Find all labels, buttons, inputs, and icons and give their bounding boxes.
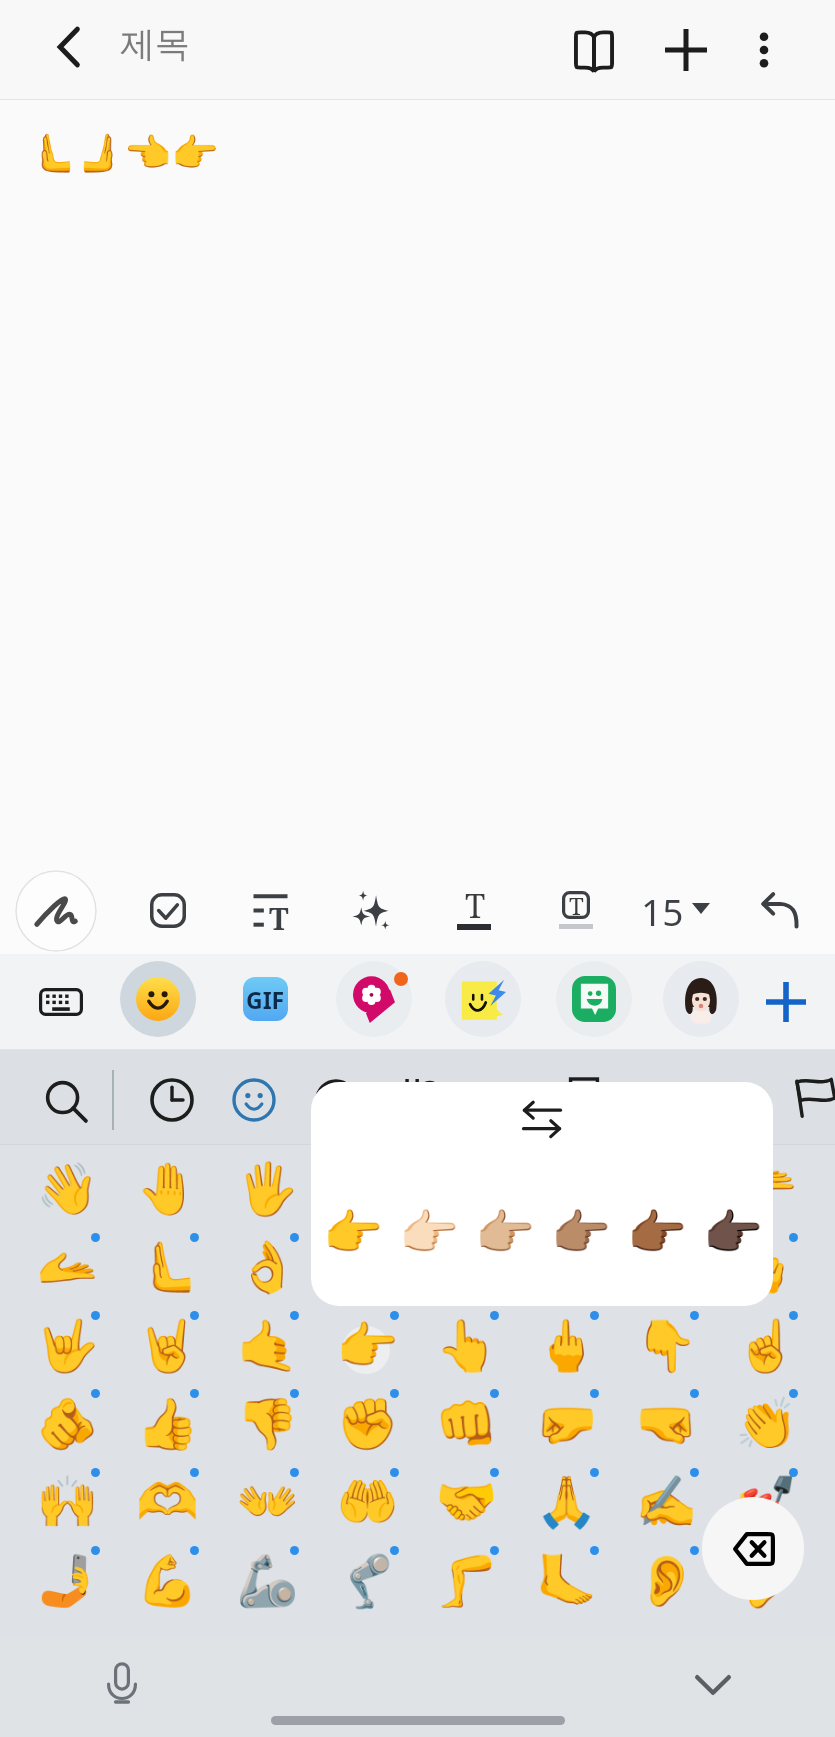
staticText: 🫲 <box>635 1160 698 1219</box>
button[interactable]: 🤛 <box>521 1385 611 1463</box>
button[interactable]: GIF <box>227 961 303 1037</box>
button[interactable]: 👍 <box>122 1385 212 1463</box>
button[interactable]: 🫵 <box>22 1385 112 1463</box>
button[interactable]: Recent emoji <box>136 1064 208 1136</box>
button[interactable]: Reading view <box>558 14 630 86</box>
button[interactable]: Text box <box>539 874 613 946</box>
button[interactable]: 🫰 <box>721 1228 811 1306</box>
button[interactable]: AR Emoji <box>663 961 739 1037</box>
staticText: 🤛 <box>535 1395 598 1454</box>
button[interactable]: Quick stickers <box>445 961 521 1037</box>
staticText: 🤞 <box>635 1238 698 1297</box>
button[interactable]: Checklist <box>131 874 205 946</box>
button[interactable]: 🖕 <box>521 1307 611 1385</box>
staticText: 🤘 <box>136 1317 199 1376</box>
button[interactable]: 🙏 <box>521 1463 611 1541</box>
button[interactable]: ✌️ <box>521 1228 611 1306</box>
button[interactable]: 👉 <box>315 1195 391 1271</box>
button[interactable]: Animals and nature <box>300 1064 372 1136</box>
button[interactable]: 👉🏾 <box>619 1195 695 1271</box>
button[interactable]: 🤳 <box>22 1542 112 1620</box>
button[interactable]: 👉🏽 <box>543 1195 619 1271</box>
staticText: 15 <box>641 886 684 930</box>
button[interactable]: 🤲 <box>322 1463 412 1541</box>
button[interactable]: 💅 <box>721 1463 811 1541</box>
staticText: 👋 <box>36 1160 99 1219</box>
button[interactable]: 🦻 <box>721 1542 811 1620</box>
staticText: 👉🏽 <box>551 1205 611 1261</box>
button[interactable]: 👉🏻 <box>391 1195 467 1271</box>
button[interactable]: Handwriting <box>15 870 97 952</box>
button[interactable]: Delete <box>702 1497 804 1600</box>
button[interactable]: 🤟 <box>22 1307 112 1385</box>
button[interactable]: 15 <box>641 886 710 930</box>
button[interactable]: Stickers <box>336 961 412 1037</box>
staticText: 🫵 <box>36 1395 99 1454</box>
button[interactable]: 🤌 <box>322 1228 412 1306</box>
button[interactable]: 🫷 <box>122 1228 212 1306</box>
button[interactable]: Back <box>32 11 104 83</box>
button[interactable]: 👉🏿 <box>695 1195 771 1271</box>
button[interactable]: Add <box>650 14 722 86</box>
button[interactable]: 👌 <box>222 1228 312 1306</box>
button[interactable]: 👏 <box>721 1385 811 1463</box>
button[interactable]: 🦾 <box>222 1542 312 1620</box>
button[interactable]: 🫷🫸👈👉 <box>29 131 219 176</box>
button[interactable]: 👋 <box>22 1150 112 1228</box>
button[interactable]: ☝️ <box>721 1307 811 1385</box>
button[interactable]: Flags <box>778 1064 835 1130</box>
button[interactable]: 🦶 <box>521 1542 611 1620</box>
button[interactable]: 👎 <box>222 1385 312 1463</box>
staticText: 🖕 <box>535 1317 598 1376</box>
button[interactable]: ✋️ <box>322 1150 412 1228</box>
button[interactable]: Food <box>382 1064 454 1136</box>
button[interactable]: 🫶 <box>122 1463 212 1541</box>
button[interactable]: Emoji <box>120 961 196 1037</box>
staticText: 👍 <box>136 1395 199 1454</box>
button[interactable]: 🙌 <box>22 1463 112 1541</box>
button[interactable]: Add stickers <box>750 966 822 1038</box>
button[interactable]: 👂 <box>621 1542 711 1620</box>
staticText: ✍️ <box>635 1473 698 1532</box>
button[interactable]: 👊 <box>421 1385 511 1463</box>
button[interactable]: Smileys <box>218 1064 290 1136</box>
button[interactable]: Search emoji <box>31 1066 103 1138</box>
button[interactable]: More options <box>728 14 800 86</box>
button[interactable]: 🫳 <box>721 1150 811 1228</box>
button[interactable]: 👉🏼 <box>467 1195 543 1271</box>
button[interactable]: Undo <box>742 874 816 946</box>
button[interactable]: 💪 <box>122 1542 212 1620</box>
button[interactable]: Text style <box>438 874 512 946</box>
button[interactable]: 🫱 <box>521 1150 611 1228</box>
button[interactable]: 🦵 <box>421 1542 511 1620</box>
button[interactable]: 🤘 <box>122 1307 212 1385</box>
button[interactable]: Bitmoji <box>556 961 632 1037</box>
button[interactable]: Voice input <box>84 1646 160 1722</box>
button[interactable]: Effects <box>333 874 407 946</box>
button[interactable]: 🤝 <box>421 1463 511 1541</box>
staticText: 🫰 <box>735 1238 798 1297</box>
button[interactable]: 🤜 <box>621 1385 711 1463</box>
button[interactable]: 🖖 <box>421 1150 511 1228</box>
button[interactable]: 🤞 <box>621 1228 711 1306</box>
button[interactable]: 제목 <box>120 22 190 66</box>
button[interactable]: 👐 <box>222 1463 312 1541</box>
button[interactable]: 🤚 <box>122 1150 212 1228</box>
button[interactable]: 🦿 <box>322 1542 412 1620</box>
staticText: 👉🏼 <box>475 1205 535 1261</box>
button[interactable]: 👇 <box>621 1307 711 1385</box>
button[interactable]: 👉 <box>322 1307 412 1385</box>
button[interactable]: 🫲 <box>621 1150 711 1228</box>
button[interactable]: 🤏 <box>421 1228 511 1306</box>
button[interactable]: 👆 <box>421 1307 511 1385</box>
button[interactable]: 🤙 <box>222 1307 312 1385</box>
button[interactable]: Objects <box>548 1064 620 1136</box>
button[interactable]: ✊️ <box>322 1385 412 1463</box>
button[interactable]: 🖐 <box>222 1150 312 1228</box>
button[interactable]: Hide keyboard <box>675 1647 751 1723</box>
staticText: 🫶 <box>136 1473 199 1532</box>
button[interactable]: Paragraph style <box>233 874 307 946</box>
button[interactable]: ✍️ <box>621 1463 711 1541</box>
button[interactable]: 🫴 <box>22 1228 112 1306</box>
button[interactable]: Keyboard <box>22 963 100 1041</box>
